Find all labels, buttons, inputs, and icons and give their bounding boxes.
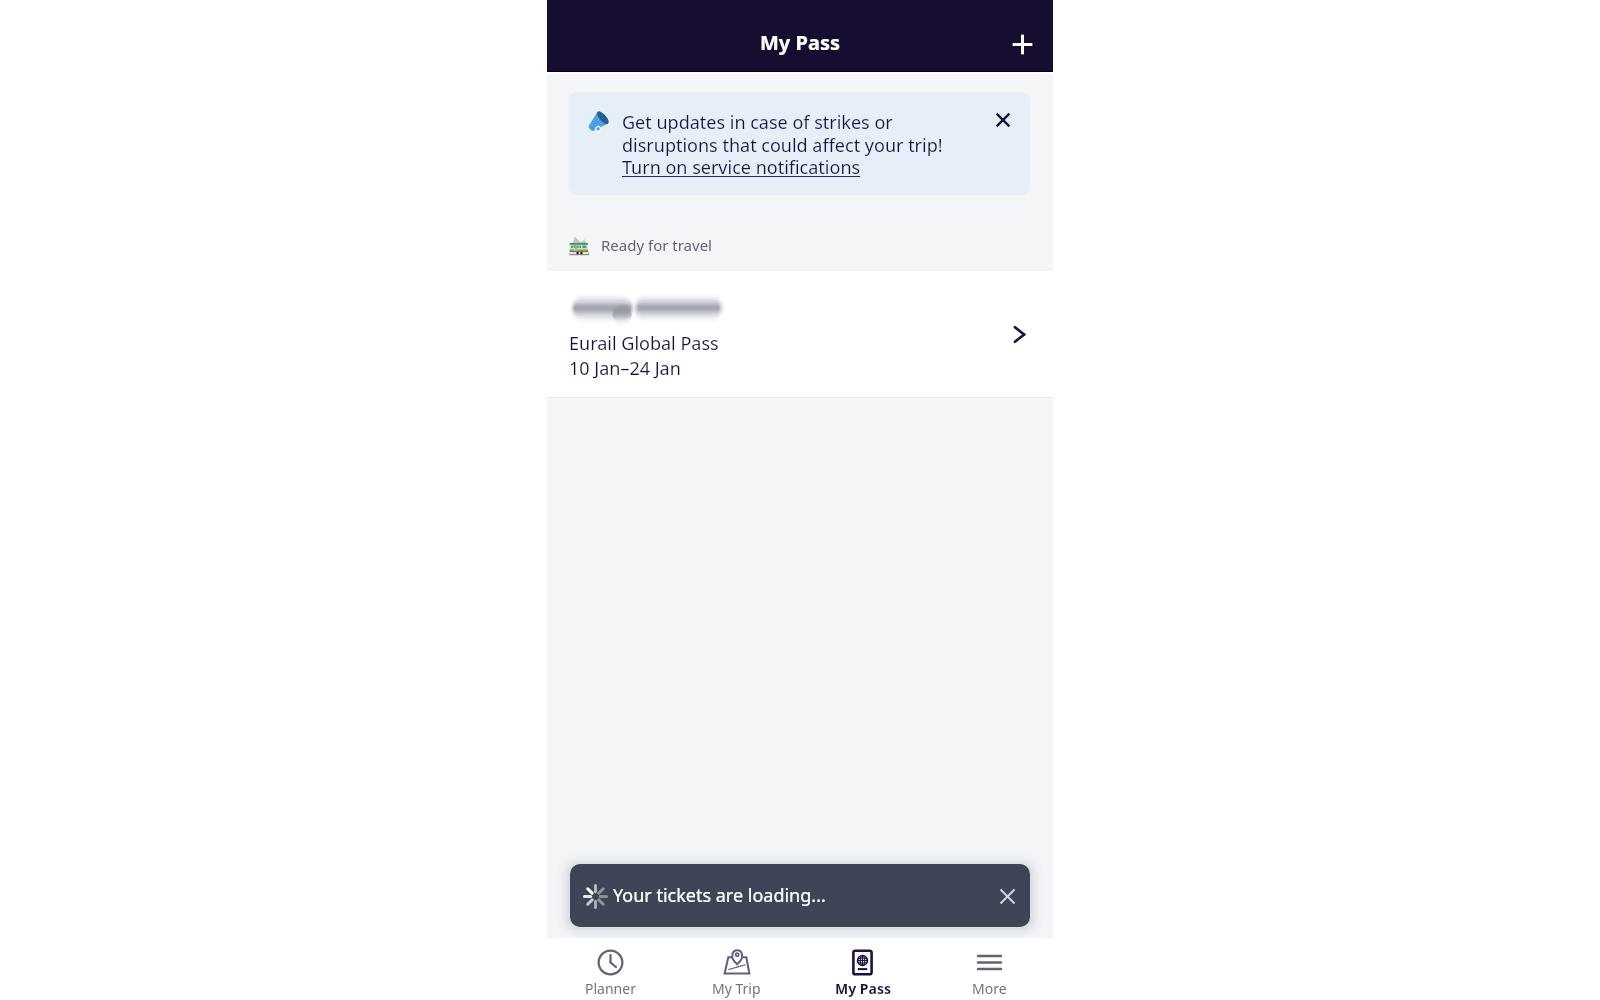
staticText: My Pass	[835, 979, 891, 998]
button[interactable]: Planner	[547, 938, 673, 1000]
button[interactable]: Turn on service notifications	[622, 155, 861, 180]
staticText: My Trip	[712, 979, 761, 998]
button[interactable]: Add pass	[998, 20, 1046, 68]
staticText: My Pass	[760, 29, 840, 56]
button[interactable]: Dismiss	[978, 92, 1030, 195]
button[interactable]: My Trip	[673, 938, 799, 1000]
button[interactable]: More	[926, 938, 1053, 1000]
staticText: 10 Jan–24 Jan	[569, 356, 681, 381]
staticText: Eurail Global Pass	[569, 331, 719, 356]
staticText: Your tickets are loading...	[613, 883, 826, 908]
button[interactable]: Dismiss loading	[989, 878, 1025, 914]
button[interactable]: Eurail Global Pass	[547, 271, 1053, 398]
staticText: Planner	[585, 979, 636, 998]
staticText: More	[972, 979, 1007, 998]
button[interactable]: My Pass	[799, 938, 926, 1000]
staticText: Ready for travel	[601, 235, 712, 255]
staticText: Get updates in case of strikes or disrup…	[622, 110, 943, 157]
